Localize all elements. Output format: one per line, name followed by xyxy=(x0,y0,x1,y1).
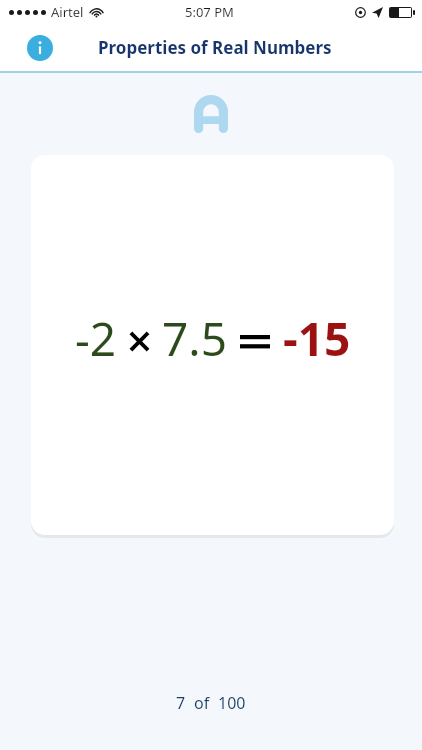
staticText: 7 xyxy=(176,692,186,714)
staticText: 7.5 xyxy=(162,307,227,370)
button[interactable]: Info xyxy=(26,34,54,62)
staticText: Properties of Real Numbers xyxy=(98,36,332,59)
staticText: -2 xyxy=(75,307,117,370)
staticText: of xyxy=(194,692,210,714)
staticText: Airtel xyxy=(51,3,84,21)
staticText: 100 xyxy=(218,692,246,714)
staticText: 5:07 PM xyxy=(185,3,234,21)
button[interactable]: -2 xyxy=(31,155,394,535)
staticText: -15 xyxy=(283,307,351,370)
